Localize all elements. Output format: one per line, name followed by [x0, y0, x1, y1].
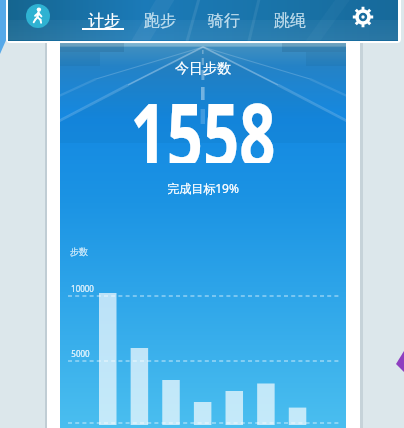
button[interactable]: 骑行: [193, 0, 255, 40]
staticText: 计步: [88, 11, 120, 31]
staticText: 步数: [70, 246, 88, 257]
button[interactable]: 跑步: [129, 0, 191, 40]
staticText: 10000: [71, 283, 94, 294]
staticText: 今日步数: [175, 60, 231, 78]
staticText: 5000: [71, 348, 90, 359]
button[interactable]: [26, 4, 50, 28]
staticText: 1558: [130, 73, 276, 163]
staticText: 完成目标19%: [167, 180, 239, 196]
button[interactable]: 跳绳: [259, 0, 321, 40]
button[interactable]: [351, 5, 375, 29]
staticText: 跳绳: [274, 11, 306, 31]
button[interactable]: 计步: [73, 0, 135, 40]
staticText: 骑行: [208, 11, 240, 31]
staticText: 跑步: [144, 11, 176, 31]
